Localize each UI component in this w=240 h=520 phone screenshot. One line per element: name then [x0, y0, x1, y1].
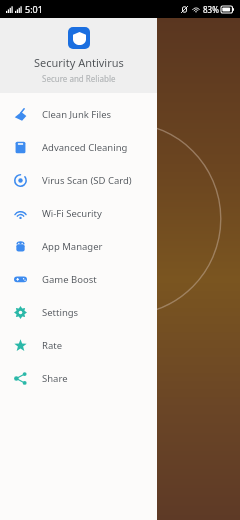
button[interactable]: Clean Junk Files — [0, 98, 157, 131]
staticText: Settings — [42, 306, 79, 319]
button[interactable]: Share — [0, 362, 157, 395]
staticText: Security Antivirus — [34, 55, 124, 70]
staticText: Virus Scan (SD Card) — [42, 174, 132, 187]
staticText: 83% — [203, 4, 219, 15]
button[interactable]: Advanced Cleaning — [0, 131, 157, 164]
staticText: Game Boost — [42, 273, 97, 286]
staticText: Secure and Reliable — [42, 73, 116, 84]
button[interactable]: Wi-Fi Security — [0, 197, 157, 230]
button[interactable]: App Manager — [0, 230, 157, 263]
staticText: Rate — [42, 339, 63, 352]
button[interactable]: Clean Junk Files — [66, 470, 174, 504]
staticText: Clean Junk Files — [42, 108, 112, 121]
button[interactable]: Rate — [0, 329, 157, 362]
staticText: Share — [42, 372, 68, 385]
button[interactable]: Virus Scan (SD Card) — [0, 164, 157, 197]
staticText: Advanced Cleaning — [42, 141, 128, 154]
button[interactable]: Game Boost — [0, 263, 157, 296]
staticText: App Manager — [42, 240, 103, 253]
staticText: Wi-Fi Security — [42, 207, 102, 220]
button[interactable]: Settings — [0, 296, 157, 329]
staticText: 5:01 — [25, 3, 43, 15]
